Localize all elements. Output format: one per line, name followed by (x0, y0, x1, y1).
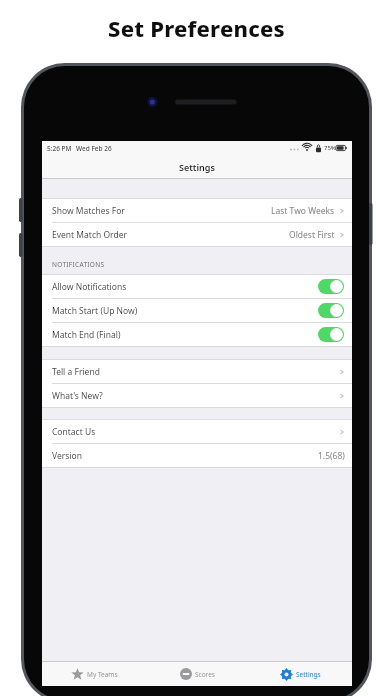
staticText: Tell a Friend (52, 366, 100, 378)
staticText: Last Two Weeks (271, 205, 335, 217)
button[interactable]: Scores (146, 662, 249, 686)
button[interactable]: Event Match Order (42, 223, 352, 246)
staticText: Wed Feb 26 (76, 144, 112, 153)
button[interactable]: My Teams (42, 662, 146, 686)
button[interactable]: Tell a Friend (42, 360, 352, 383)
staticText: Settings (296, 670, 321, 679)
button[interactable]: Toggle (318, 327, 344, 342)
button[interactable]: Toggle (318, 279, 344, 294)
staticText: Oldest First (289, 229, 335, 241)
button[interactable]: Settings (249, 662, 352, 686)
button[interactable]: Version (42, 444, 352, 467)
staticText: What's New? (52, 390, 103, 402)
button[interactable]: Toggle (318, 303, 344, 318)
staticText: Scores (195, 670, 215, 679)
button[interactable]: Match End (Final) (42, 323, 352, 346)
button[interactable]: Match Start (Up Now) (42, 299, 352, 322)
staticText: Match Start (Up Now) (52, 305, 138, 317)
staticText: Settings (179, 161, 215, 173)
staticText: Match End (Final) (52, 329, 121, 341)
button[interactable]: Show Matches For (42, 199, 352, 222)
staticText: Set Preferences (108, 13, 285, 43)
staticText: 75% (324, 144, 336, 152)
staticText: 5:26 PM (47, 144, 72, 153)
button[interactable]: What's New? (42, 384, 352, 407)
staticText: Show Matches For (52, 205, 125, 217)
staticText: 1.5(68) (318, 450, 345, 462)
staticText: Contact Us (52, 426, 96, 438)
staticText: Event Match Order (52, 229, 127, 241)
staticText: NOTIFICATIONS (52, 260, 105, 269)
button[interactable]: Contact Us (42, 420, 352, 443)
button[interactable]: Allow Notifications (42, 275, 352, 298)
staticText: Allow Notifications (52, 281, 127, 293)
staticText: My Teams (87, 670, 118, 679)
staticText: Version (52, 450, 82, 462)
